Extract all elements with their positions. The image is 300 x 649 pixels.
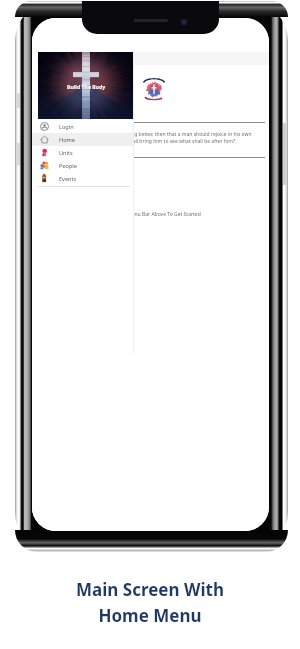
staticText: People [59, 162, 77, 170]
staticText: Use The Menu Bar Above To Get Started [107, 211, 201, 218]
button[interactable]: Units [32, 146, 134, 159]
staticText: Wherefore I perceive that there is nothi… [39, 131, 252, 138]
staticText: Events [59, 175, 77, 183]
button[interactable]: Events [32, 172, 134, 185]
staticText: works; for that is his portion: for who … [39, 138, 236, 145]
button[interactable]: Login [32, 120, 134, 133]
staticText: Build The Body [67, 83, 106, 90]
staticText: Login [59, 123, 74, 131]
button[interactable]: People [32, 159, 134, 172]
staticText: Main Screen With [76, 578, 224, 601]
staticText: Home Menu [98, 604, 202, 627]
staticText: Units [59, 149, 73, 157]
staticText: Home [59, 136, 75, 144]
button[interactable]: Home [32, 133, 134, 146]
